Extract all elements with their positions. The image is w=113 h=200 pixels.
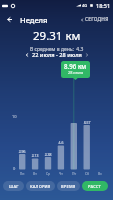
staticText: В среднем в день: 4.3 <box>30 46 84 53</box>
staticText: 22 июля - 28 июля <box>32 51 82 59</box>
staticText: 2.13 <box>28 153 42 158</box>
button[interactable]: ВРЕМЯ <box>57 181 80 191</box>
button[interactable]: КАЛОРИЯ <box>26 181 55 191</box>
staticText: ВРЕМЯ <box>61 184 76 189</box>
staticText: Ср <box>41 171 55 176</box>
staticText: 4G <box>82 3 88 8</box>
staticText: 29.31 км <box>33 28 81 44</box>
staticText: 18:51 <box>96 2 111 9</box>
staticText: 8.96 км <box>64 62 87 70</box>
button[interactable]: СЕГОДНЯ <box>76 14 112 25</box>
staticText: 10 <box>12 114 17 119</box>
staticText: РАССТ <box>88 184 102 189</box>
staticText: 2.96 <box>15 149 29 154</box>
staticText: Пт <box>67 171 81 176</box>
staticText: 4.6 <box>54 140 68 145</box>
button[interactable]: Next week <box>82 50 92 60</box>
staticText: Вт <box>28 171 42 176</box>
staticText: Неделя <box>20 15 48 25</box>
staticText: 8.57 <box>80 120 94 125</box>
staticText: Вс <box>93 171 107 176</box>
staticText: Чт <box>54 171 68 176</box>
staticText: 28 июля <box>68 70 84 75</box>
button[interactable]: Previous week <box>22 50 32 60</box>
staticText: 2.38 <box>41 152 55 157</box>
staticText: ШАГ <box>9 184 19 189</box>
button[interactable]: ШАГ <box>3 181 24 191</box>
staticText: КАЛОРИЯ <box>30 184 51 189</box>
button[interactable]: 8.96 км <box>61 61 90 78</box>
staticText: СЕГОДНЯ <box>85 16 109 23</box>
staticText: Пн <box>15 171 29 176</box>
staticText: Сб <box>80 171 94 176</box>
staticText: 0 <box>13 166 16 171</box>
button[interactable]: Back <box>1 11 17 27</box>
button[interactable]: РАССТ <box>82 181 108 191</box>
